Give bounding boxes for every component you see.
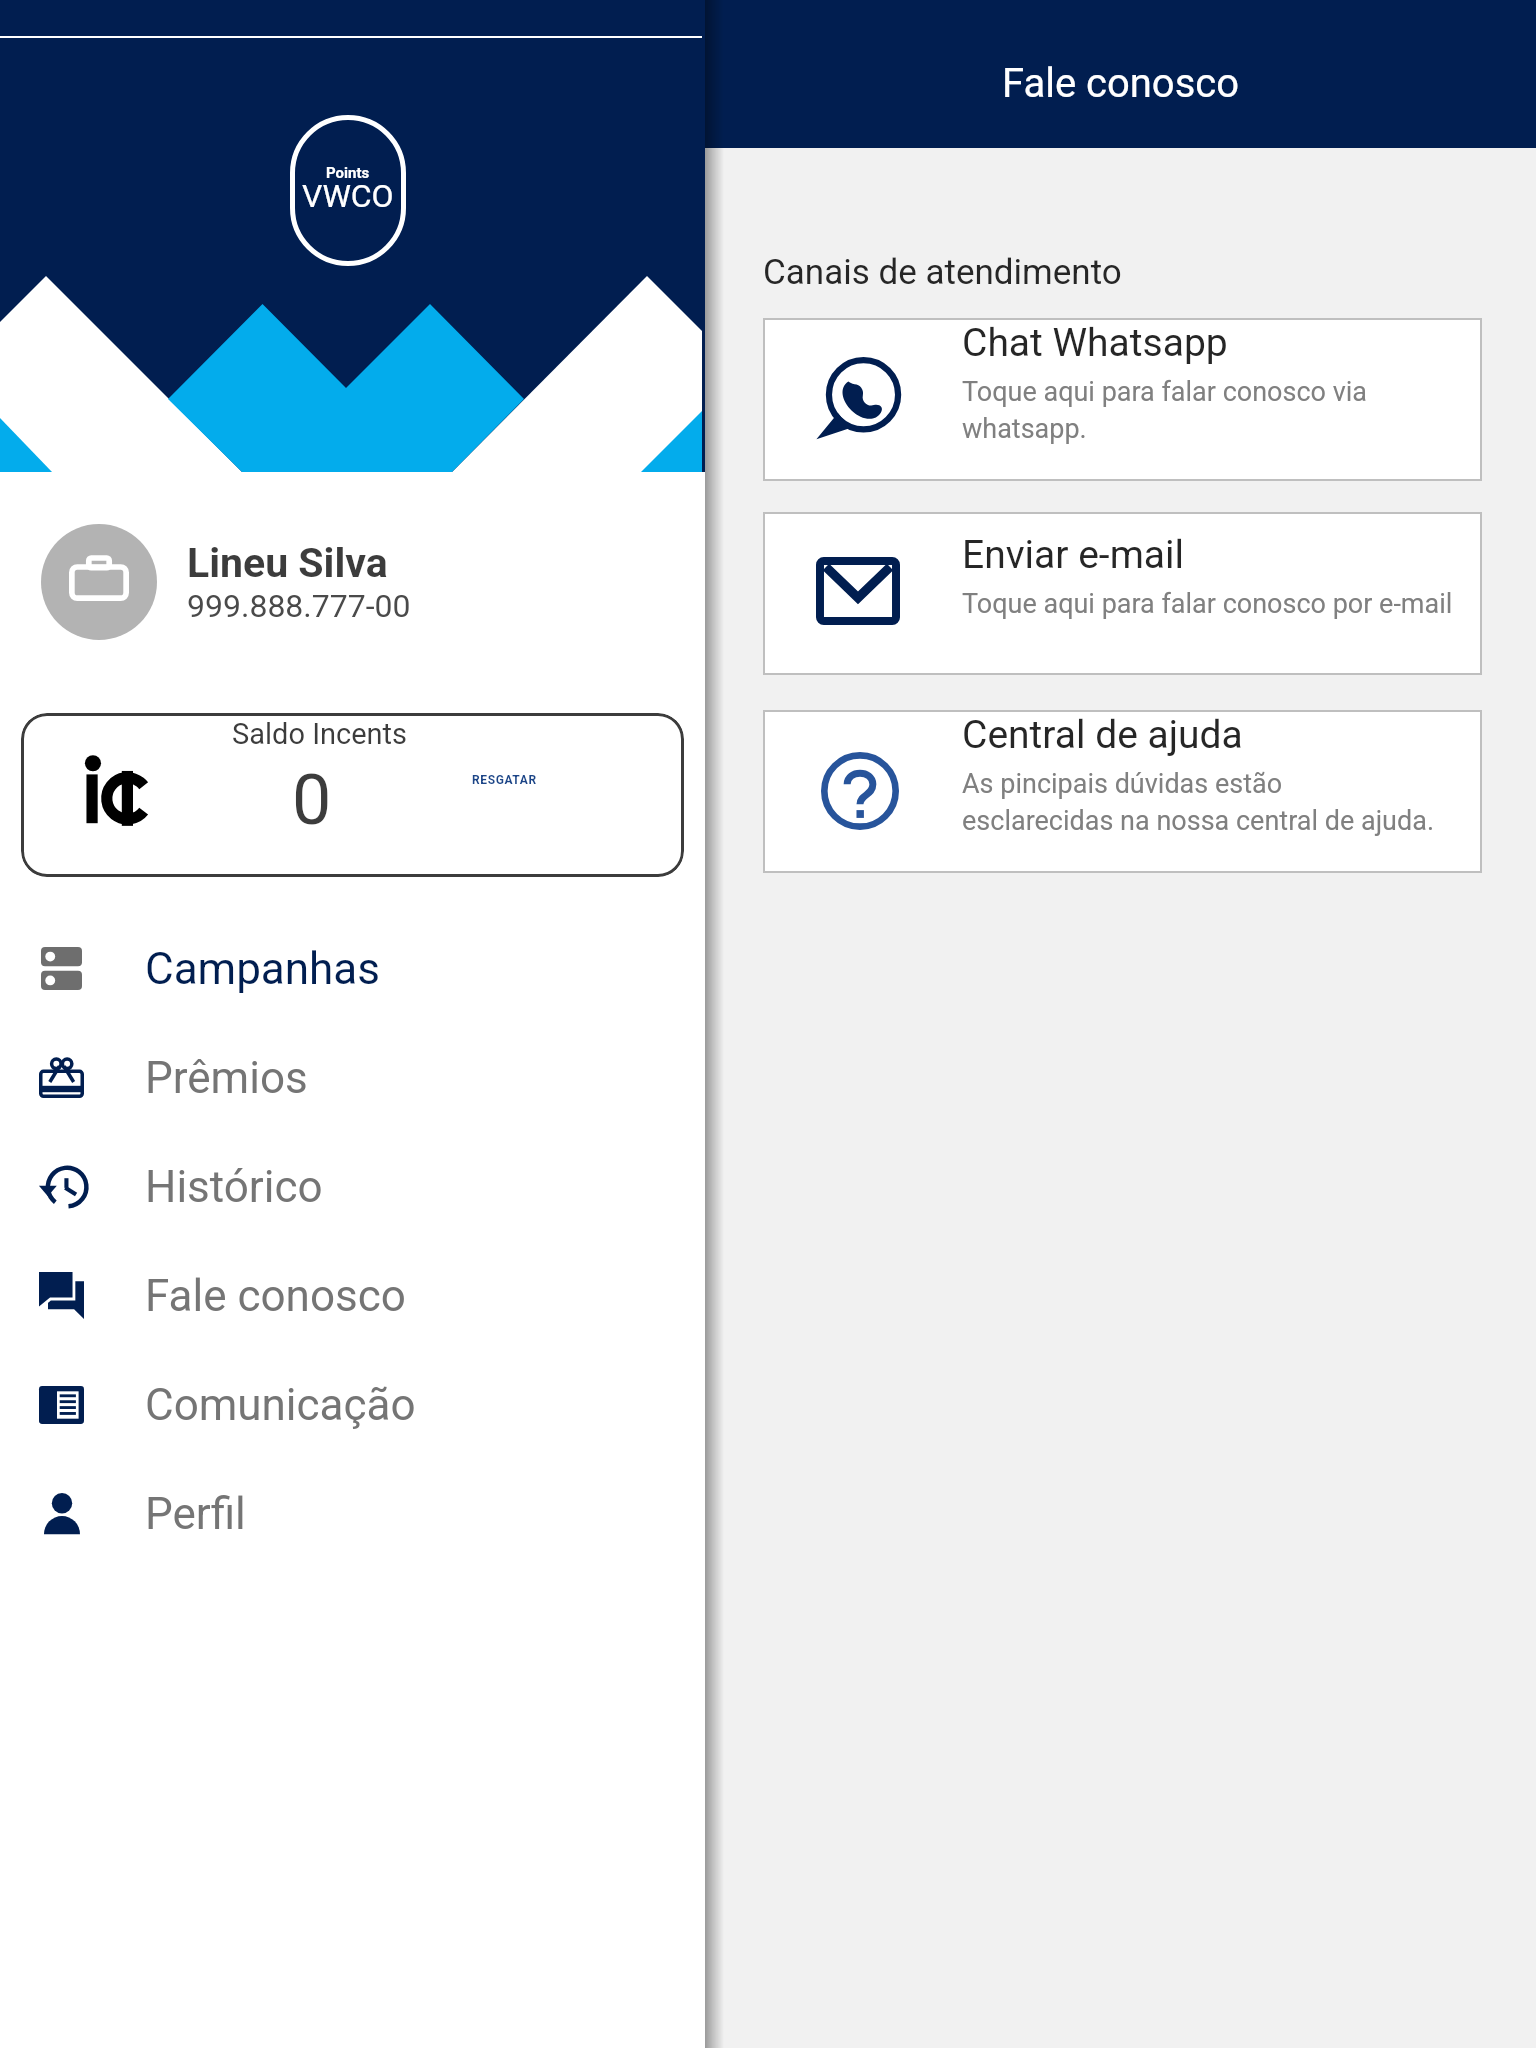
- staticText: Prêmios: [145, 1052, 308, 1104]
- staticText: Toque aqui para falar conosco via whatsa…: [962, 376, 1367, 444]
- staticText: Histórico: [145, 1161, 323, 1213]
- button[interactable]: Enviar e-mail: [763, 512, 1482, 675]
- button[interactable]: Histórico: [0, 1132, 705, 1241]
- staticText: RESGATAR: [472, 773, 537, 787]
- staticText: Comunicação: [145, 1379, 416, 1431]
- staticText: Central de ajuda: [962, 712, 1243, 758]
- other: Chat Whatsapp: [824, 359, 900, 435]
- staticText: Perfil: [145, 1488, 246, 1540]
- staticText: Points: [326, 164, 370, 182]
- staticText: 999.888.777-00: [187, 587, 411, 625]
- staticText: Lineu Silva: [187, 539, 388, 587]
- button[interactable]: Fale conosco: [0, 1241, 705, 1350]
- button[interactable]: Campanhas: [0, 914, 705, 1023]
- staticText: Fale conosco: [145, 1270, 406, 1322]
- staticText: As pincipais dúvidas estão esclarecidas …: [962, 768, 1435, 836]
- staticText: Chat Whatsapp: [962, 320, 1228, 366]
- staticText: Canais de atendimento: [763, 252, 1122, 293]
- button[interactable]: Saldo Incents: [21, 713, 684, 877]
- staticText: 0: [292, 759, 332, 841]
- button[interactable]: Perfil: [0, 1459, 705, 1568]
- other: Central de ajuda: [821, 752, 899, 830]
- button[interactable]: Prêmios: [0, 1023, 705, 1132]
- staticText: Toque aqui para falar conosco por e-mail: [962, 588, 1453, 620]
- other: Enviar e-mail: [816, 557, 900, 625]
- button[interactable]: Central de ajuda: [763, 710, 1482, 873]
- staticText: Fale conosco: [705, 60, 1536, 107]
- button[interactable]: Chat Whatsapp: [763, 318, 1482, 481]
- staticText: VWCO: [302, 177, 394, 215]
- staticText: Campanhas: [145, 943, 380, 995]
- button[interactable]: Comunicação: [0, 1350, 705, 1459]
- staticText: Saldo Incents: [232, 717, 408, 751]
- staticText: Enviar e-mail: [962, 532, 1185, 578]
